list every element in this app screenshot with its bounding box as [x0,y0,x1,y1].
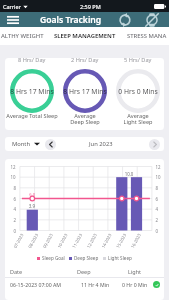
staticText: 5 Hrs/ Day [124,58,152,64]
staticText: Month [12,140,31,148]
staticText: STRESS MANA [127,32,167,40]
button[interactable]: 06-15-2023 07:00 AM [10,278,160,291]
staticText: 2 Hrs/ Day [71,58,99,64]
button[interactable]: Month [12,140,40,148]
button[interactable]: ALTHY WEIGHT [0,27,44,45]
staticText: Date [10,268,23,275]
staticText: 0 Hr 0 Min [122,281,148,288]
staticText: SLEEP MANAGEMENT [54,32,116,40]
staticText: 8 Hrs 17 Mins [10,87,54,96]
button[interactable]: Next month [149,139,160,150]
staticText: Deep Sleep [74,255,99,261]
button[interactable]: SLEEP MANAGEMENT [44,27,125,45]
staticText: Carrier [3,3,21,10]
staticText: Average Deep Sleep [70,112,100,126]
staticText: ALTHY WEIGHT [1,32,44,40]
staticText: Deep [77,268,91,275]
staticText: 8 Hrs/ Day [18,58,46,64]
button[interactable]: Sync [116,12,133,27]
staticText: Average Light Sleep [123,112,153,126]
staticText: Average Total Sleep [6,112,58,120]
staticText: 11 Hr 4 Min [81,281,110,288]
staticText: Goals Tracking [40,14,102,26]
staticText: Jun 2023 [89,140,113,148]
button[interactable]: STRESS MANA [125,27,169,45]
staticText: 0 Hrs 0 Mins [118,87,158,96]
staticText: Sleep Goal [42,255,65,261]
staticText: Light [128,268,142,275]
staticText: Light Sleep [108,255,132,261]
button[interactable]: Menu [6,13,19,26]
staticText: 06-15-2023 07:00 AM [10,281,62,288]
staticText: 2:59 PM [80,3,101,10]
button[interactable]: Watch disconnected [143,12,160,27]
button[interactable]: Previous month [45,139,56,150]
staticText: 8 Hrs 17 Mins [63,87,107,96]
